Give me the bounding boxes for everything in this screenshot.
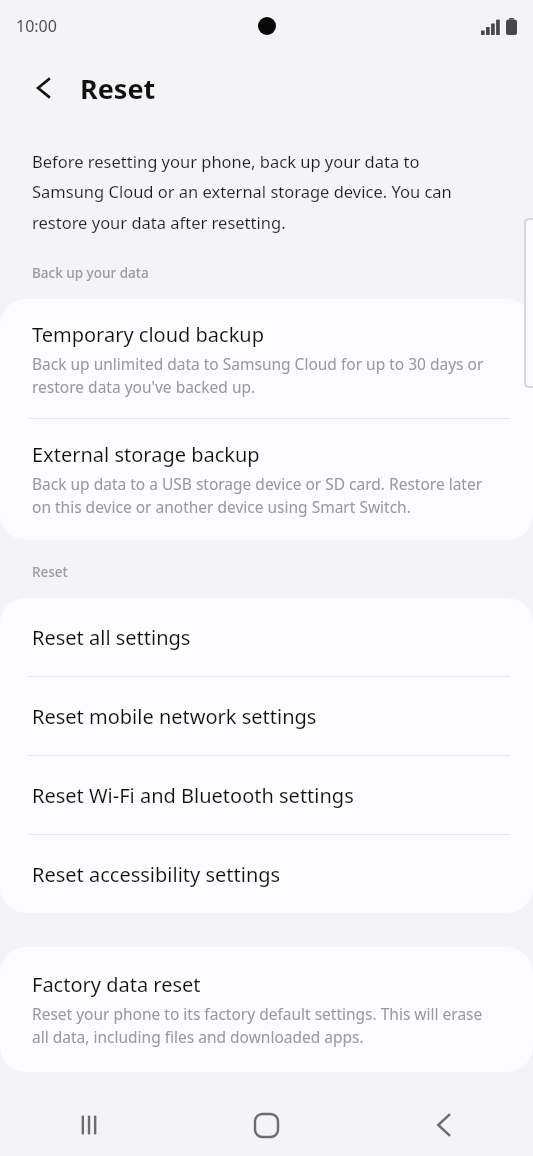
staticText: Reset your phone to its factory default … — [32, 1003, 499, 1048]
staticText: Back up data to a USB storage device or … — [32, 473, 493, 518]
staticText: Reset accessibility settings — [32, 861, 281, 888]
button[interactable]: Back — [14, 58, 74, 118]
staticText: Reset — [32, 563, 68, 581]
staticText: 10:00 — [16, 15, 57, 37]
button[interactable]: Back — [355, 1094, 533, 1156]
staticText: Reset Wi-Fi and Bluetooth settings — [32, 782, 354, 809]
button[interactable]: Reset mobile network settings — [0, 677, 533, 755]
button[interactable]: Factory data reset — [0, 947, 533, 1072]
button[interactable]: External storage backup — [0, 419, 533, 540]
button[interactable]: Temporary cloud backup — [0, 299, 533, 418]
staticText: External storage backup — [32, 441, 260, 468]
button[interactable]: Recent apps — [0, 1094, 177, 1156]
button[interactable]: Reset all settings — [0, 598, 533, 676]
staticText: Reset all settings — [32, 624, 191, 651]
staticText: Temporary cloud backup — [32, 321, 265, 348]
button[interactable]: Home — [177, 1094, 355, 1156]
staticText: Factory data reset — [32, 971, 201, 998]
staticText: Before resetting your phone, back up you… — [32, 150, 493, 234]
staticText: Back up your data — [32, 264, 149, 282]
button[interactable]: Reset accessibility settings — [0, 835, 533, 913]
button[interactable]: Reset Wi-Fi and Bluetooth settings — [0, 756, 533, 834]
staticText: Back up unlimited data to Samsung Cloud … — [32, 353, 493, 398]
staticText: Reset — [80, 70, 156, 107]
staticText: Reset mobile network settings — [32, 703, 317, 730]
